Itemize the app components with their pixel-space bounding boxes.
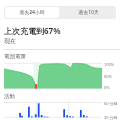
staticText: 100% <box>104 62 115 67</box>
button[interactable]: 過去10天 <box>60 6 116 19</box>
staticText: 過去24小時 <box>19 9 45 16</box>
staticText: 活動 <box>4 93 15 100</box>
button[interactable]: 過去24小時 <box>5 7 59 18</box>
button[interactable]: Battery level chart <box>4 62 102 90</box>
staticText: 30 分鐘 <box>104 115 118 120</box>
staticText: 0% <box>104 85 110 90</box>
staticText: 現在 <box>4 37 16 45</box>
staticText: 50% <box>104 74 112 79</box>
staticText: 過去10天 <box>78 9 99 16</box>
button[interactable]: Activity chart <box>4 101 102 120</box>
staticText: 電池電量 <box>4 53 26 60</box>
staticText: 60 分鐘 <box>104 101 118 106</box>
staticText: 上次充電到67% <box>4 25 61 36</box>
